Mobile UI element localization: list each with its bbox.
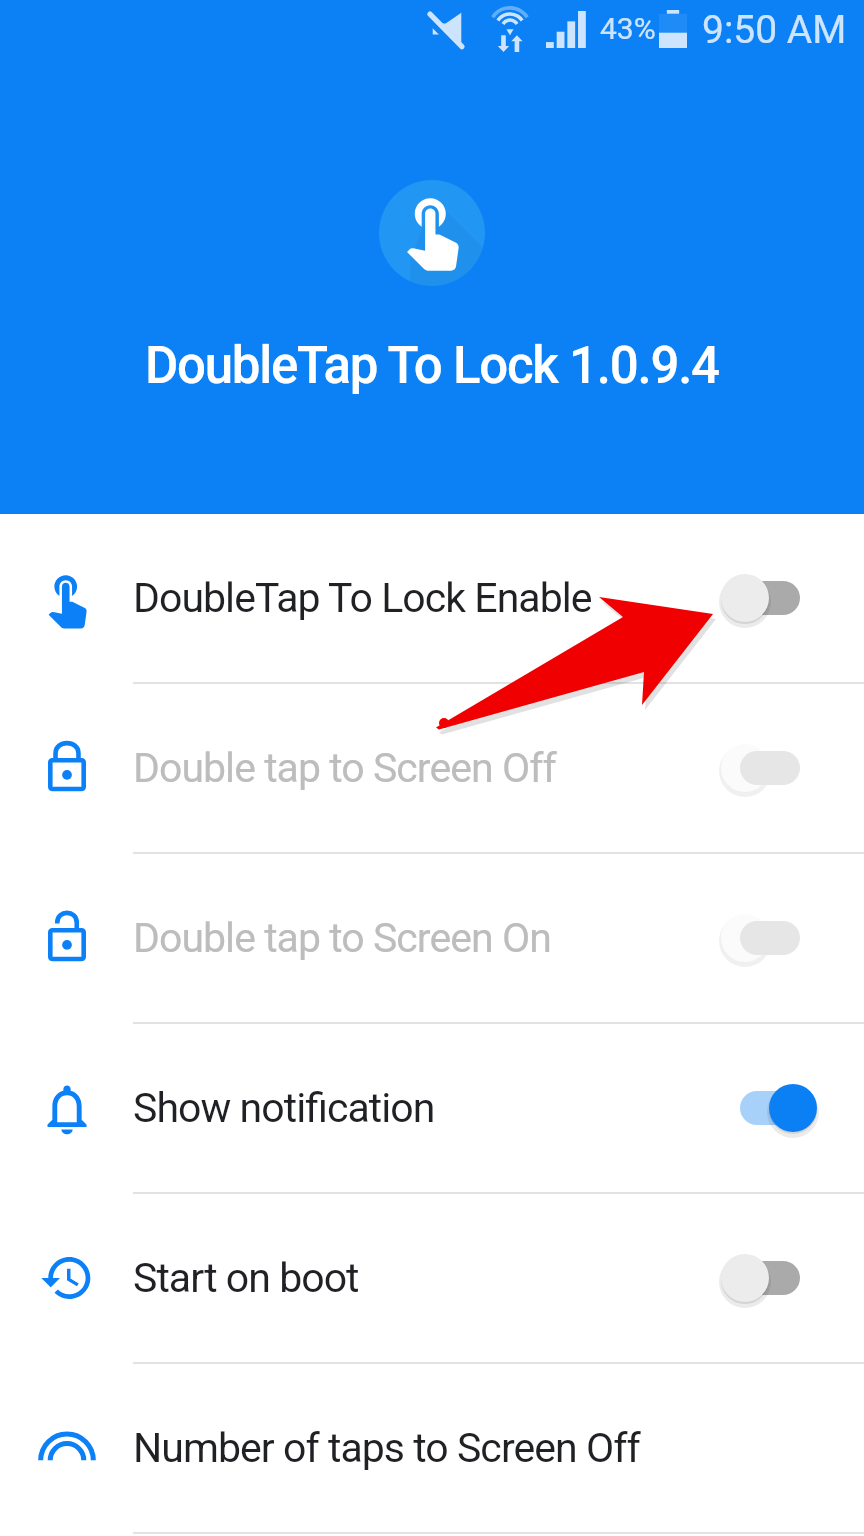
button[interactable]: Number of taps to Screen Off [0,1364,864,1534]
button[interactable]: Start on boot [0,1194,864,1364]
staticText: 9:50 AM [702,7,847,53]
staticText: Show notification [133,1084,720,1132]
staticText: 43% [600,11,656,46]
button[interactable]: DoubleTap To Lock Enable [0,514,864,684]
button[interactable]: Show notification [0,1024,864,1194]
button[interactable]: Double tap to Screen On [0,854,864,1024]
staticText: Double tap to Screen Off [133,744,720,792]
staticText: DoubleTap To Lock Enable [133,574,720,622]
button[interactable]: Double tap to Screen Off [0,684,864,854]
staticText: Start on boot [133,1254,720,1302]
staticText: Number of taps to Screen Off [133,1424,864,1472]
staticText: DoubleTap To Lock 1.0.9.4 [145,336,719,396]
staticText: Double tap to Screen On [133,914,720,962]
